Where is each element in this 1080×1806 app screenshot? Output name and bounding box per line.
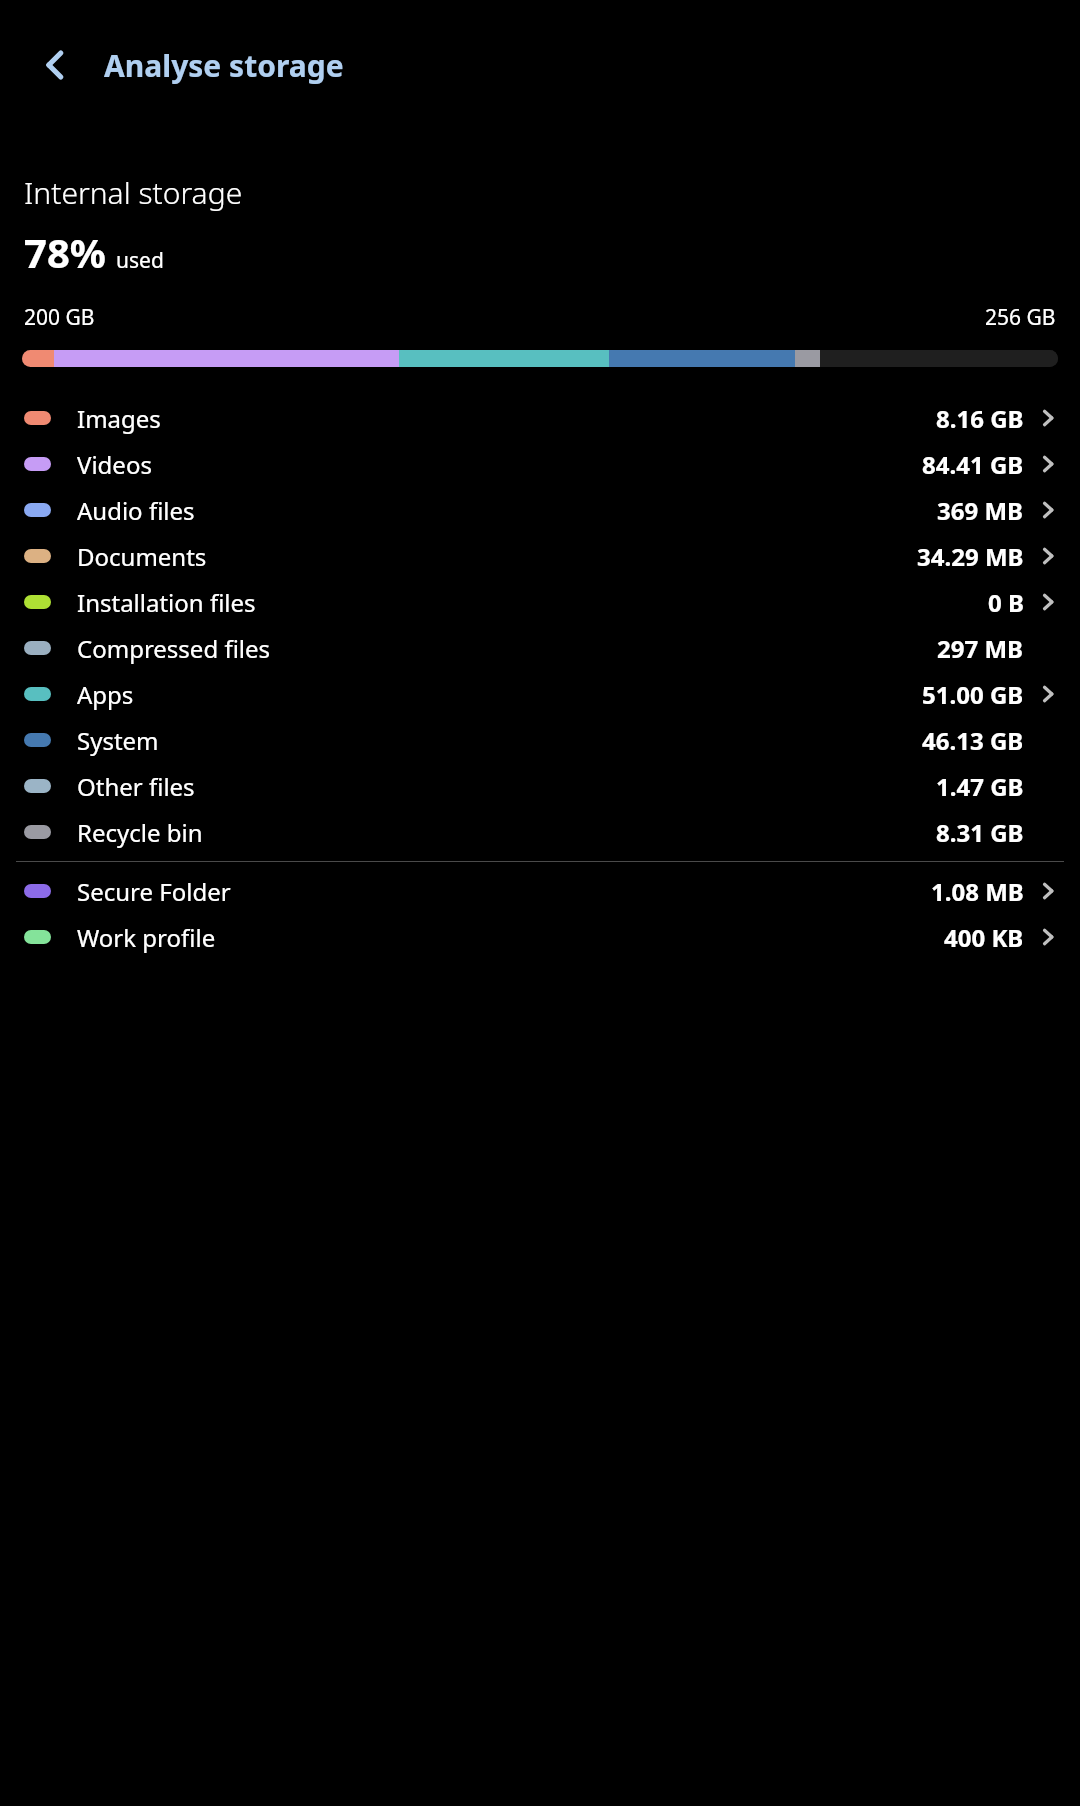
staticText: 400 KB bbox=[944, 921, 1024, 954]
staticText: Recycle bin bbox=[77, 816, 203, 849]
staticText: 78% bbox=[24, 225, 106, 279]
staticText: Work profile bbox=[77, 921, 216, 954]
button[interactable]: System bbox=[0, 717, 1080, 763]
staticText: Installation files bbox=[77, 586, 256, 619]
staticText: 297 MB bbox=[937, 632, 1024, 665]
staticText: 46.13 GB bbox=[922, 724, 1024, 757]
button[interactable]: Secure Folder bbox=[0, 868, 1080, 914]
staticText: 1.47 GB bbox=[936, 770, 1024, 803]
button[interactable]: Work profile bbox=[0, 914, 1080, 960]
button[interactable]: Compressed files bbox=[0, 625, 1080, 671]
staticText: Secure Folder bbox=[77, 875, 231, 908]
staticText: 51.00 GB bbox=[922, 678, 1024, 711]
button[interactable]: Other files bbox=[0, 763, 1080, 809]
staticText: Internal storage bbox=[24, 172, 243, 213]
button[interactable]: Installation files bbox=[0, 579, 1080, 625]
button[interactable]: Audio files bbox=[0, 487, 1080, 533]
staticText: Compressed files bbox=[77, 632, 271, 665]
button[interactable]: Back bbox=[22, 31, 90, 99]
staticText: 8.16 GB bbox=[936, 402, 1024, 435]
button[interactable]: Apps bbox=[0, 671, 1080, 717]
staticText: 200 GB bbox=[24, 303, 95, 332]
staticText: 369 MB bbox=[937, 494, 1024, 527]
staticText: Audio files bbox=[77, 494, 195, 527]
staticText: Videos bbox=[77, 448, 152, 481]
staticText: 1.08 MB bbox=[931, 875, 1024, 908]
button[interactable]: Images bbox=[0, 395, 1080, 441]
staticText: System bbox=[77, 724, 159, 757]
button[interactable]: Videos bbox=[0, 441, 1080, 487]
staticText: 34.29 MB bbox=[917, 540, 1024, 573]
staticText: 256 GB bbox=[985, 303, 1056, 332]
staticText: 84.41 GB bbox=[922, 448, 1024, 481]
staticText: Apps bbox=[77, 678, 134, 711]
staticText: Other files bbox=[77, 770, 195, 803]
staticText: Analyse storage bbox=[104, 45, 344, 86]
staticText: Images bbox=[77, 402, 161, 435]
staticText: 0 B bbox=[988, 586, 1024, 619]
button[interactable]: Documents bbox=[0, 533, 1080, 579]
button[interactable]: Recycle bin bbox=[0, 809, 1080, 855]
staticText: Documents bbox=[77, 540, 207, 573]
staticText: used bbox=[116, 246, 164, 275]
staticText: 8.31 GB bbox=[936, 816, 1024, 849]
